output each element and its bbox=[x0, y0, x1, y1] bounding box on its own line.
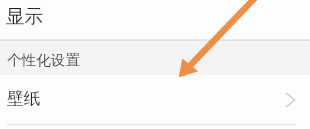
staticText: 壁纸 bbox=[7, 88, 41, 109]
staticText: 个性化设置 bbox=[7, 51, 80, 69]
staticText: 显示 bbox=[6, 5, 43, 28]
other: Open 壁纸 bbox=[279, 86, 301, 114]
button[interactable]: 显示 bbox=[0, 0, 310, 39]
button[interactable]: 壁纸 bbox=[0, 75, 310, 124]
